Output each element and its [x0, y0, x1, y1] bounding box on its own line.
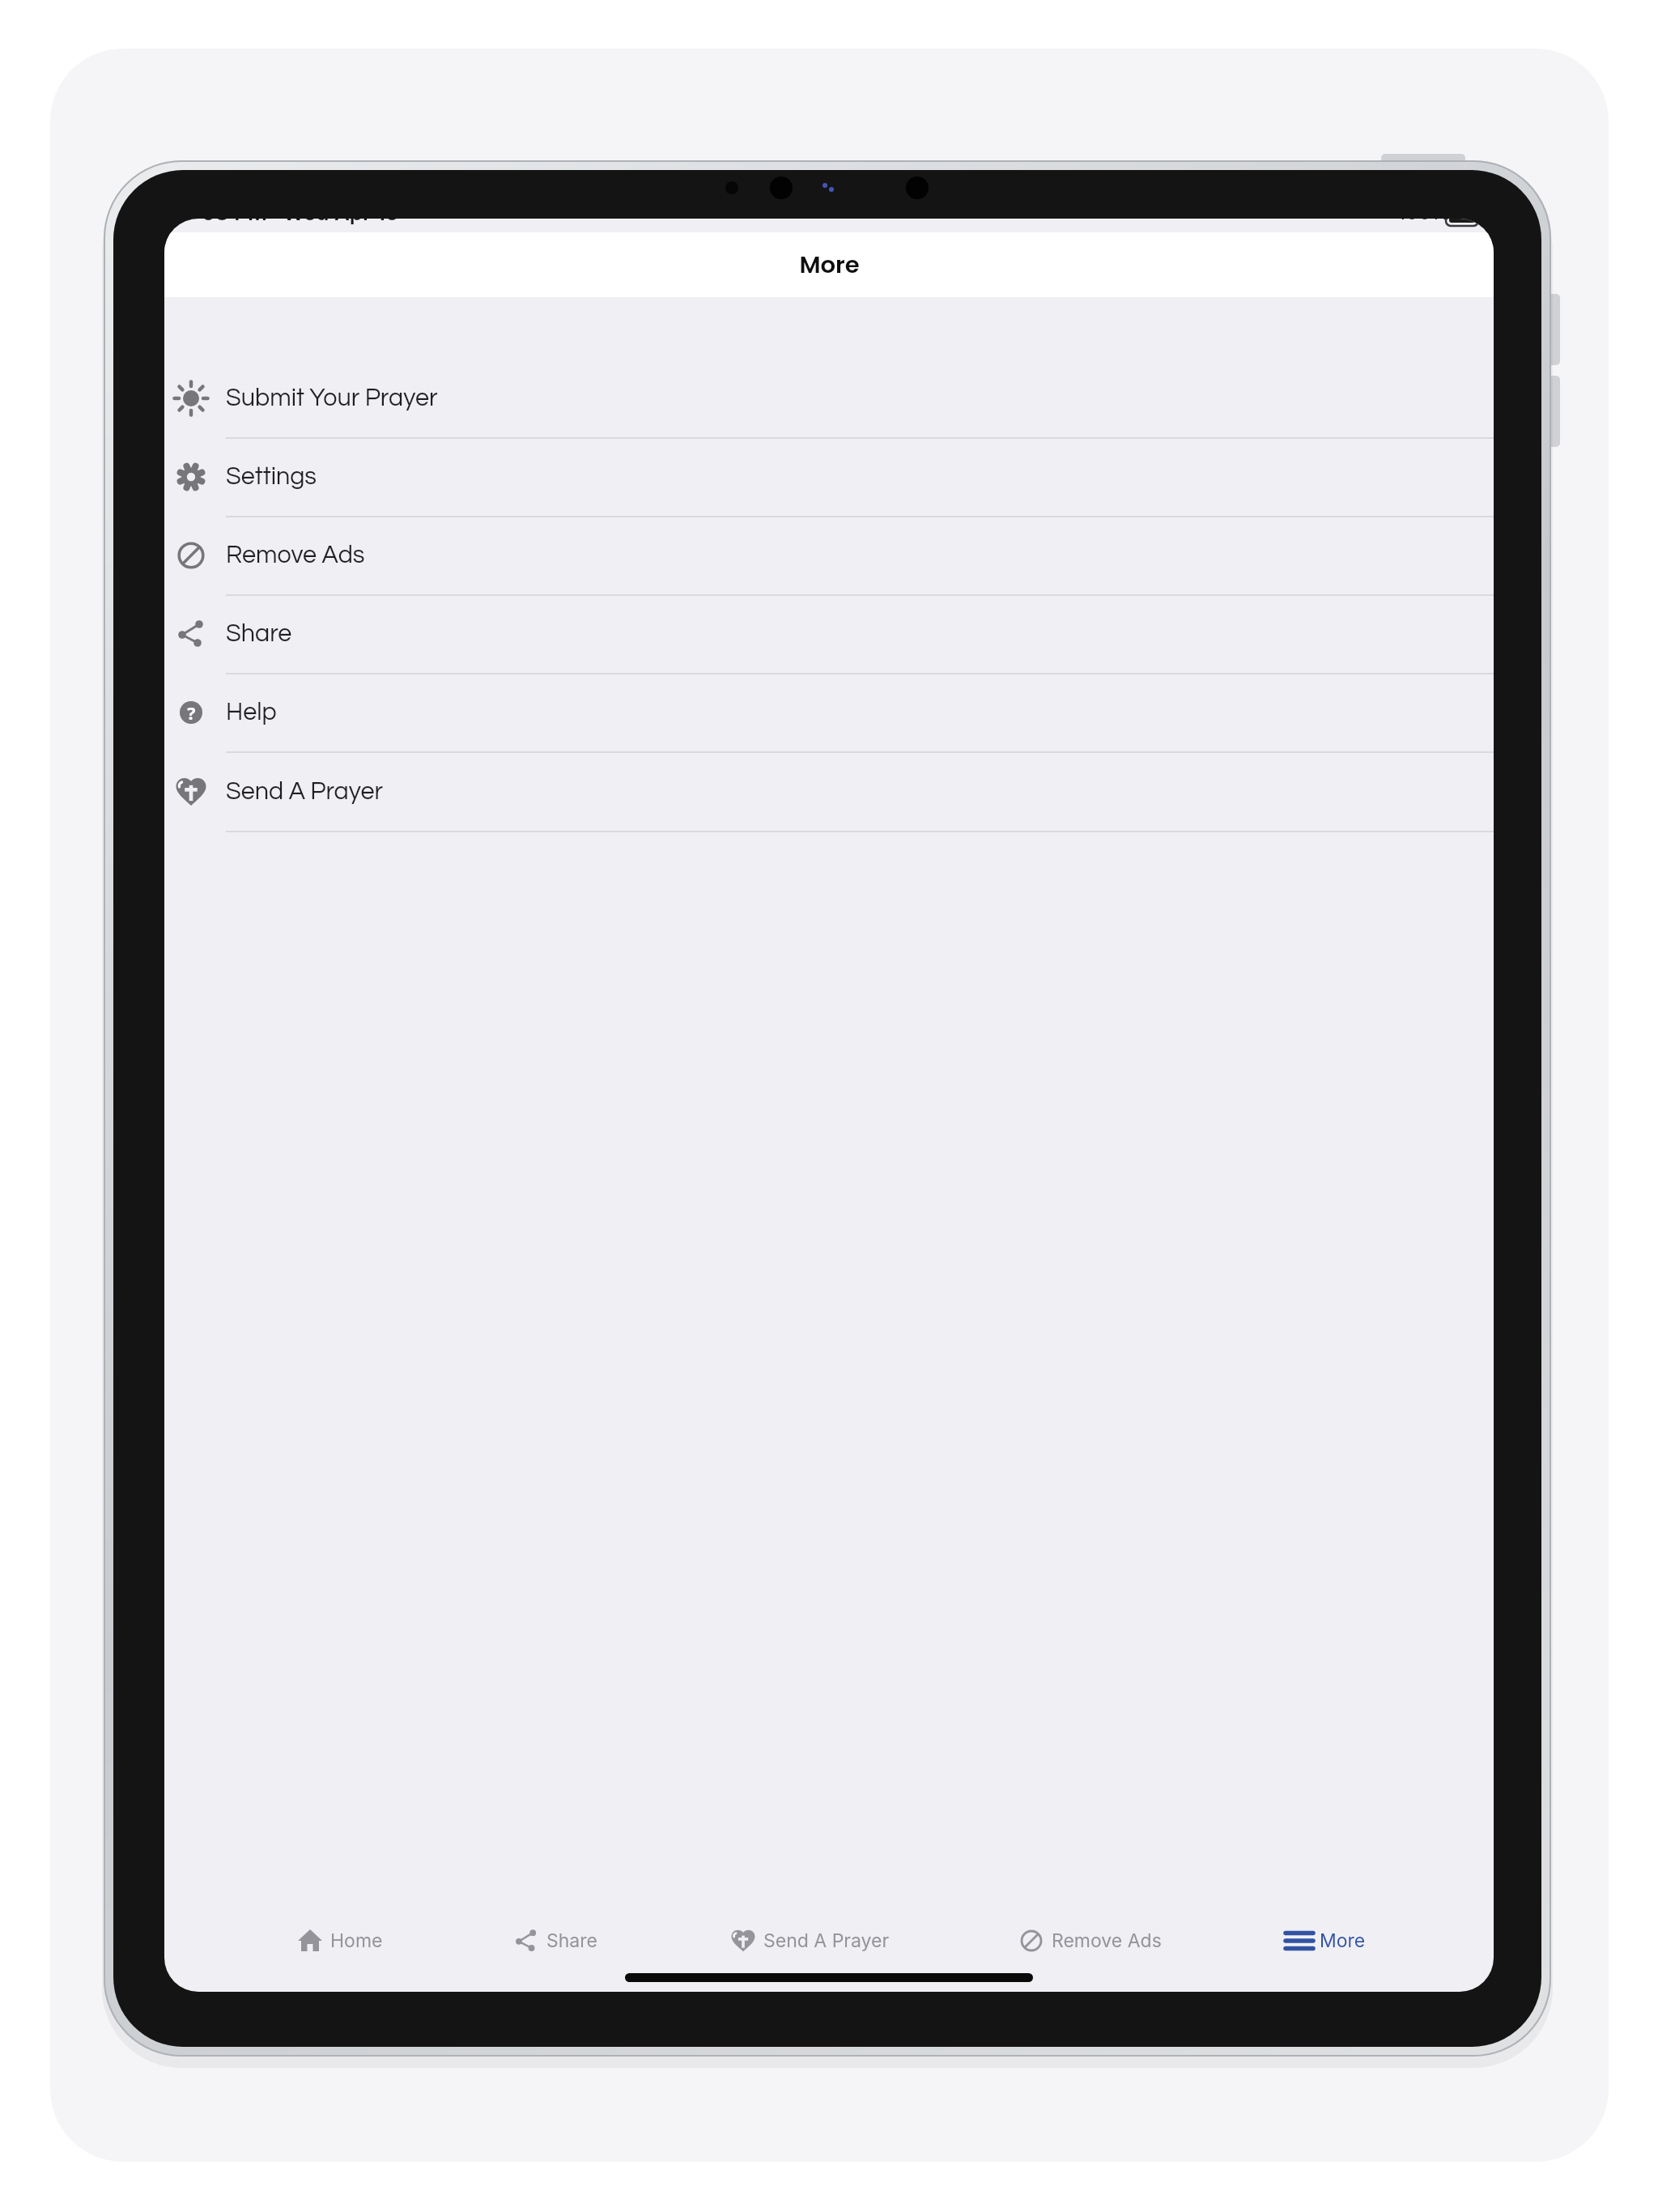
- staticText: Submit Your Prayer: [226, 385, 438, 410]
- button[interactable]: Share: [513, 1916, 597, 1965]
- staticText: 100%: [1397, 219, 1452, 224]
- button[interactable]: Remove Ads: [164, 516, 1494, 594]
- staticText: Share: [546, 1929, 597, 1952]
- staticText: Remove Ads: [226, 542, 365, 568]
- button[interactable]: Submit Your Prayer: [164, 359, 1494, 437]
- staticText: Settings: [226, 464, 317, 489]
- button[interactable]: Home: [297, 1916, 383, 1965]
- staticText: 3:08 PM Wed Apr 15: [181, 219, 399, 225]
- button[interactable]: Settings: [164, 437, 1494, 516]
- button[interactable]: Send A Prayer: [730, 1916, 890, 1965]
- staticText: Remove Ads: [1052, 1929, 1162, 1952]
- button[interactable]: More: [1286, 1916, 1366, 1965]
- staticText: More: [1320, 1929, 1366, 1952]
- staticText: More: [799, 249, 860, 282]
- button[interactable]: Remove Ads: [1018, 1916, 1162, 1965]
- button[interactable]: Share: [164, 594, 1494, 673]
- staticText: Home: [330, 1929, 383, 1952]
- staticText: ?: [187, 700, 196, 725]
- staticText: Help: [226, 700, 277, 725]
- staticText: Send A Prayer: [763, 1929, 890, 1952]
- button[interactable]: ?: [164, 673, 1494, 751]
- staticText: Share: [226, 621, 292, 646]
- button[interactable]: Send A Prayer: [164, 752, 1494, 831]
- staticText: Send A Prayer: [226, 779, 384, 804]
